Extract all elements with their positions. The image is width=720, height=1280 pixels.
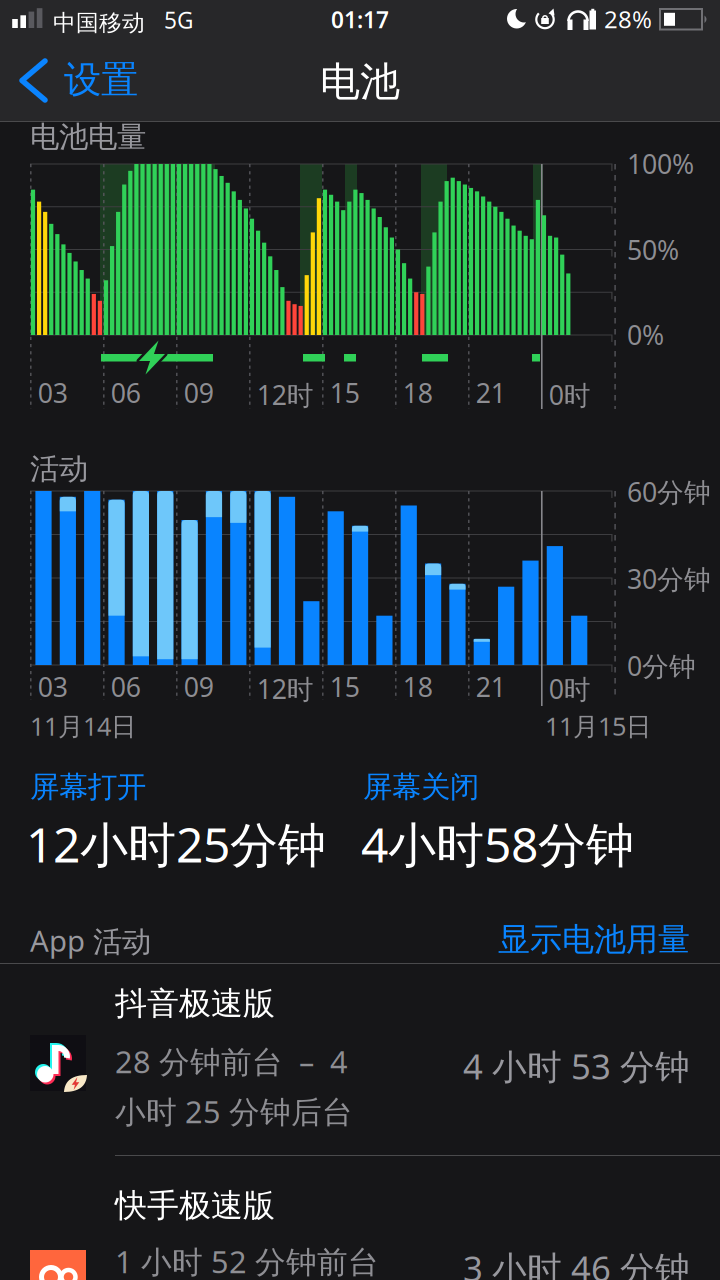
staticText: 活动 (30, 451, 88, 487)
staticText: 03 (38, 375, 68, 410)
staticText: 09 (184, 375, 214, 410)
staticText: 06 (111, 669, 141, 704)
staticText: 11月15日 (545, 709, 651, 743)
staticText: 小时 25 分钟后台 (115, 1091, 353, 1132)
staticText: 15 (330, 375, 360, 410)
staticText: 显示电池用量 (498, 920, 690, 959)
staticText: 09 (184, 669, 214, 704)
staticText: 设置 (64, 57, 138, 103)
staticText: 01:17 (331, 4, 389, 34)
staticText: 0分钟 (627, 648, 696, 683)
staticText: 电池 (320, 57, 400, 106)
staticText: 60分钟 (627, 474, 711, 509)
staticText: 12小时25分钟 (26, 812, 326, 876)
staticText: 03 (38, 669, 68, 704)
button[interactable]: 快手极速版 (0, 1156, 720, 1280)
staticText: 12时 (257, 671, 314, 706)
staticText: 屏幕打开 (30, 769, 146, 805)
staticText: 21 (476, 375, 506, 410)
staticText: 4 小时 53 分钟 (463, 1043, 690, 1089)
staticText: 11月14日 (30, 709, 136, 743)
staticText: 06 (111, 375, 141, 410)
staticText: 15 (330, 669, 360, 704)
button[interactable]: 显示电池用量 (0, 0, 690, 39)
staticText: 100% (627, 146, 694, 181)
staticText: 50% (627, 232, 679, 267)
staticText: 12时 (257, 377, 314, 412)
staticText: 0% (627, 317, 664, 352)
staticText: 快手极速版 (115, 1186, 275, 1225)
staticText: App 活动 (30, 921, 151, 960)
staticText: 18 (403, 669, 433, 704)
staticText: 0时 (549, 671, 591, 706)
button[interactable]: 抖音极速版 (0, 963, 720, 1280)
staticText: 5G (164, 5, 194, 35)
staticText: 30分钟 (627, 561, 711, 596)
staticText: 1 小时 52 分钟前台 (115, 1241, 379, 1280)
staticText: 中国移动 (53, 9, 145, 37)
staticText: 18 (403, 375, 433, 410)
staticText: 3 小时 46 分钟 (463, 1245, 690, 1280)
staticText: 0时 (549, 377, 591, 412)
button[interactable]: 设置 (14, 54, 720, 1280)
staticText: 28% (604, 3, 652, 35)
staticText: 电池电量 (30, 119, 146, 155)
staticText: 21 (476, 669, 506, 704)
staticText: 抖音极速版 (115, 984, 275, 1023)
staticText: 28 分钟前台 – 4 (115, 1041, 348, 1082)
staticText: 4小时58分钟 (361, 812, 634, 876)
staticText: 屏幕关闭 (363, 769, 479, 805)
